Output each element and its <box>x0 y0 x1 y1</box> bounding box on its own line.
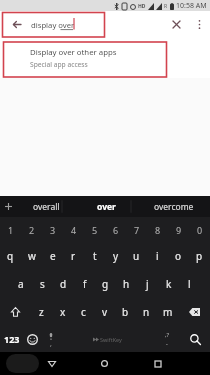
button[interactable]: ,? <box>154 326 180 352</box>
button[interactable]: r <box>63 242 84 270</box>
staticText: f <box>83 277 87 291</box>
staticText: 2 <box>29 224 35 236</box>
staticText: o <box>175 249 182 263</box>
button[interactable]: overall <box>16 196 76 217</box>
button[interactable]: Display over other apps <box>0 38 210 78</box>
button[interactable]: over <box>76 196 137 217</box>
button[interactable]: 3 <box>42 217 63 242</box>
button[interactable]: y <box>105 242 126 270</box>
staticText: p <box>196 249 203 263</box>
button[interactable]: h <box>116 270 137 298</box>
button[interactable]: o <box>168 242 189 270</box>
button[interactable]: Shift <box>0 298 30 326</box>
button[interactable]: Clear search <box>165 11 189 38</box>
button[interactable]: i <box>147 242 168 270</box>
button[interactable]: Voice input <box>41 326 61 352</box>
button[interactable]: u <box>126 242 147 270</box>
staticText: 4 <box>71 224 77 236</box>
staticText: HD <box>138 3 146 10</box>
staticText: e <box>50 249 56 263</box>
staticText: over <box>97 201 116 213</box>
staticText: v <box>102 305 108 319</box>
button[interactable]: More options <box>189 11 210 38</box>
staticText: c <box>81 305 86 319</box>
button[interactable]: 5 <box>84 217 105 242</box>
button[interactable]: a <box>10 270 32 298</box>
button[interactable]: 0 <box>189 217 210 242</box>
staticText: y <box>113 249 119 263</box>
staticText: R <box>164 3 168 10</box>
button[interactable]: Backspace <box>178 298 210 326</box>
staticText: overall <box>33 201 60 213</box>
staticText: t <box>93 249 97 263</box>
button[interactable]: t <box>84 242 105 270</box>
button[interactable]: m <box>157 298 178 326</box>
staticText: h <box>123 277 130 291</box>
button[interactable]: 8 <box>147 217 168 242</box>
button[interactable]: SwiftKey <box>61 326 154 352</box>
button[interactable]: w <box>21 242 42 270</box>
staticText: SwiftKey <box>100 336 122 343</box>
button[interactable]: Search <box>180 326 210 352</box>
button[interactable]: b <box>115 298 136 326</box>
staticText: m <box>163 305 173 319</box>
staticText: d <box>60 277 67 291</box>
button[interactable]: Recent apps <box>144 352 171 375</box>
staticText: 5 <box>92 224 98 236</box>
button[interactable]: n <box>136 298 157 326</box>
button[interactable]: 7 <box>126 217 147 242</box>
staticText: g <box>102 277 109 291</box>
staticText: k <box>166 277 172 291</box>
button[interactable]: overcome <box>137 196 210 217</box>
button[interactable]: Navigate up <box>0 11 27 38</box>
button[interactable]: 123 <box>0 326 23 352</box>
button[interactable]: q <box>0 242 21 270</box>
button[interactable]: z <box>30 298 52 326</box>
staticText: 9 <box>176 224 182 236</box>
staticText: , <box>50 339 52 349</box>
button[interactable]: 2 <box>21 217 42 242</box>
staticText: i <box>156 249 159 263</box>
staticText: display over <box>31 20 75 30</box>
button[interactable]: g <box>95 270 116 298</box>
staticText: Special app access <box>30 60 88 69</box>
button[interactable]: Emoji <box>23 326 41 352</box>
staticText: r <box>71 249 76 263</box>
staticText: w <box>28 249 36 263</box>
staticText: Display over other apps <box>30 47 117 58</box>
staticText: 10:58 AM <box>176 1 207 11</box>
button[interactable]: Home <box>91 352 118 375</box>
staticText: 1 <box>8 224 14 236</box>
button[interactable]: 6 <box>105 217 126 242</box>
staticText: 123 <box>4 333 20 345</box>
button[interactable]: j <box>137 270 158 298</box>
staticText: x <box>60 305 66 319</box>
button[interactable]: 9 <box>168 217 189 242</box>
staticText: 6 <box>113 224 119 236</box>
button[interactable]: s <box>32 270 53 298</box>
button[interactable]: display over <box>27 11 165 38</box>
staticText: z <box>39 305 44 319</box>
button[interactable]: f <box>74 270 95 298</box>
button[interactable]: Back <box>38 352 65 375</box>
staticText: j <box>146 277 149 291</box>
button[interactable]: k <box>158 270 179 298</box>
staticText: s <box>40 277 45 291</box>
staticText: l <box>188 277 191 291</box>
button[interactable]: l <box>179 270 200 298</box>
button[interactable]: Add to dictionary <box>0 196 16 217</box>
button[interactable]: v <box>94 298 115 326</box>
staticText: 0 <box>197 224 203 236</box>
staticText: n <box>143 305 150 319</box>
button[interactable]: e <box>42 242 63 270</box>
staticText: . <box>166 338 168 348</box>
staticText: ,? <box>165 331 170 339</box>
button[interactable]: x <box>52 298 73 326</box>
button[interactable]: 1 <box>0 217 21 242</box>
staticText: u <box>133 249 140 263</box>
staticText: q <box>7 249 14 263</box>
button[interactable]: 4 <box>63 217 84 242</box>
button[interactable]: p <box>189 242 210 270</box>
button[interactable]: d <box>53 270 74 298</box>
button[interactable]: c <box>73 298 94 326</box>
